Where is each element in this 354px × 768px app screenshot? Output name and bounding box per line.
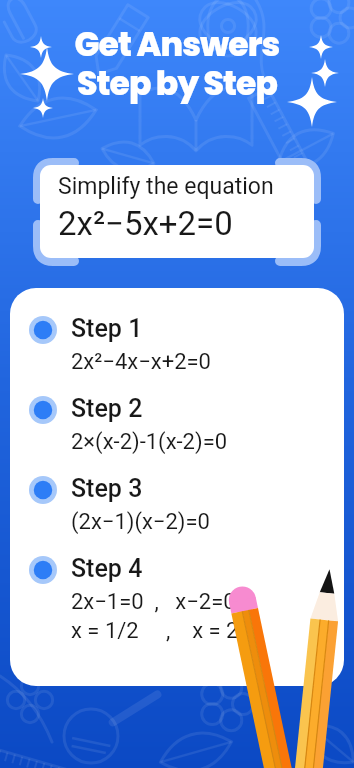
- staticText: Get Answers Step by Step: [0, 21, 354, 107]
- staticText: x = 1/2 , x = 2: [71, 618, 239, 644]
- staticText: (2x−1)(x−2)=0: [71, 509, 210, 535]
- staticText: Step 4: [71, 554, 143, 583]
- staticText: 2x²−5x+2=0: [58, 204, 233, 243]
- staticText: Step 2: [71, 394, 143, 423]
- staticText: Step 3: [71, 474, 143, 503]
- button[interactable]: Step 1: [10, 314, 344, 375]
- button[interactable]: Step 3: [10, 474, 344, 535]
- button[interactable]: Step 4: [10, 554, 344, 644]
- button[interactable]: Simplify the equation: [40, 165, 314, 258]
- staticText: 2x−1=0 , x−2=0: [71, 589, 236, 615]
- staticText: Simplify the equation: [58, 173, 274, 200]
- staticText: Step 1: [71, 314, 143, 343]
- staticText: 2×(x-2)-1(x-2)=0: [71, 429, 228, 455]
- button[interactable]: Step 2: [10, 394, 344, 455]
- staticText: 2x²−4x−x+2=0: [71, 349, 211, 375]
